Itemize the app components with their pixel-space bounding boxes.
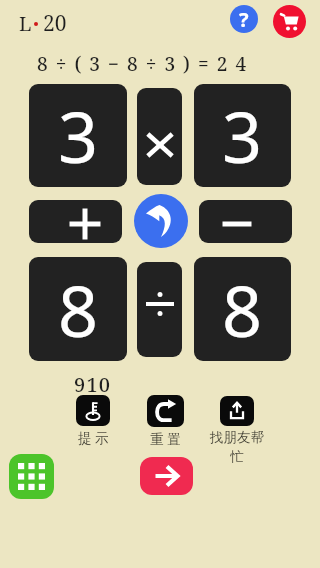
- button[interactable]: 8: [29, 257, 127, 361]
- button[interactable]: 找朋友帮忙: [204, 396, 270, 465]
- button[interactable]: 8: [194, 257, 291, 361]
- staticText: 8 ÷ ( 3 − 8 ÷ 3 ) = 2 4: [37, 51, 248, 77]
- button[interactable]: [137, 88, 182, 185]
- button[interactable]: Levels: [9, 454, 54, 499]
- staticText: 8: [222, 262, 263, 357]
- button[interactable]: Shop: [273, 5, 306, 38]
- button[interactable]: [137, 262, 182, 357]
- button[interactable]: Undo: [134, 194, 188, 248]
- button[interactable]: L: [19, 9, 67, 38]
- staticText: 910: [74, 371, 112, 398]
- staticText: 20: [43, 9, 67, 38]
- staticText: 提 示: [78, 429, 109, 447]
- button[interactable]: Help: [230, 5, 258, 33]
- staticText: 8: [58, 262, 99, 357]
- button[interactable]: 3: [29, 84, 127, 187]
- button[interactable]: 重 置: [131, 395, 200, 448]
- button[interactable]: [199, 200, 292, 243]
- staticText: 找朋友帮忙: [204, 429, 270, 465]
- staticText: 3: [58, 88, 99, 183]
- button[interactable]: 3: [194, 84, 291, 187]
- button[interactable]: [29, 200, 122, 243]
- button[interactable]: Next: [140, 457, 193, 495]
- button[interactable]: 提 示: [60, 395, 126, 447]
- staticText: L: [19, 10, 32, 37]
- staticText: 重 置: [150, 430, 181, 448]
- staticText: 3: [222, 88, 263, 183]
- staticText: ?: [239, 6, 249, 33]
